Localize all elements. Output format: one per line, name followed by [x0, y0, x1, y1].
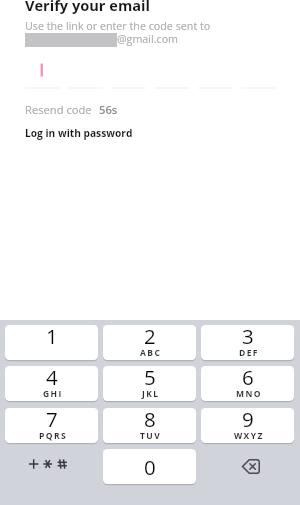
button[interactable]: 2 [103, 325, 196, 360]
button[interactable]: 0 [103, 449, 196, 484]
staticText: WXYZ [234, 430, 264, 442]
button[interactable]: 3 [201, 325, 294, 360]
staticText: MNO [236, 388, 262, 400]
button[interactable]: 1 [5, 325, 98, 360]
staticText: 9 [242, 408, 254, 433]
staticText: 56s [99, 102, 118, 117]
staticText: GHI [43, 388, 63, 400]
button[interactable]: 8 [103, 408, 196, 443]
button[interactable]: 7 [5, 408, 98, 443]
staticText: ABC [140, 347, 162, 359]
button[interactable]: 5 [103, 366, 196, 401]
staticText: TUV [140, 430, 162, 442]
button[interactable]: 4 [5, 366, 98, 401]
staticText: PQRS [39, 430, 67, 442]
staticText: 4 [46, 366, 58, 391]
staticText: 3 [242, 325, 254, 350]
staticText: 6 [242, 366, 254, 391]
staticText: Use the link or enter the code sent to [25, 19, 211, 34]
staticText: 2 [144, 325, 156, 350]
button[interactable]: Resend code [25, 102, 118, 117]
button[interactable]: Log in with password [25, 126, 133, 140]
staticText: Resend code [25, 102, 92, 117]
button[interactable]: Backspace [201, 449, 294, 484]
staticText: DEF [239, 347, 259, 359]
staticText: 0 [144, 453, 156, 481]
button[interactable]: 6 [201, 366, 294, 401]
staticText: 1 [46, 325, 58, 350]
button[interactable]: 9 [201, 408, 294, 443]
staticText: 8 [144, 408, 156, 433]
staticText: Verify your email [25, 0, 150, 15]
button[interactable]: Symbols [5, 449, 98, 484]
staticText: @gmail.com [117, 32, 179, 47]
staticText: Log in with password [25, 126, 133, 140]
staticText: JKL [142, 388, 160, 400]
staticText: 7 [46, 408, 58, 433]
staticText: 5 [144, 366, 156, 391]
